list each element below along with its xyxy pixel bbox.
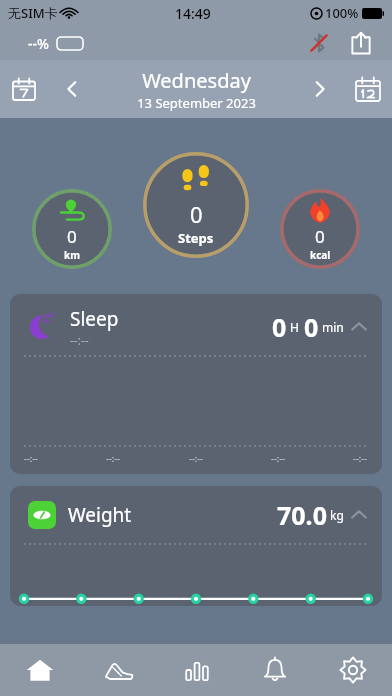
- staticText: Sleep: [70, 306, 119, 332]
- button[interactable]: Activity: [79, 644, 158, 696]
- staticText: 无SIM卡: [8, 4, 58, 22]
- button[interactable]: Home: [0, 644, 79, 696]
- staticText: 0: [304, 310, 319, 344]
- button[interactable]: 0: [143, 152, 249, 258]
- staticText: Wednesday: [142, 67, 251, 94]
- staticText: 13 September 2023: [137, 94, 256, 112]
- staticText: Steps: [178, 229, 214, 247]
- staticText: 100%: [325, 4, 359, 22]
- staticText: 0: [67, 225, 77, 248]
- staticText: H: [290, 319, 299, 335]
- staticText: km: [64, 248, 80, 262]
- button[interactable]: Alarms: [236, 644, 314, 696]
- button[interactable]: Weight: [10, 486, 382, 606]
- staticText: 0: [272, 310, 287, 344]
- staticText: kg: [330, 507, 344, 523]
- staticText: --:--: [70, 332, 89, 348]
- button[interactable]: Calendar: [344, 65, 392, 113]
- staticText: --:--: [189, 452, 204, 464]
- staticText: 14:49: [175, 4, 211, 23]
- button[interactable]: Previous day: [48, 65, 96, 113]
- button[interactable]: Sleep: [10, 294, 382, 474]
- staticText: --:--: [106, 452, 121, 464]
- staticText: --%: [28, 34, 49, 53]
- button[interactable]: Week view: [0, 65, 48, 113]
- button[interactable]: Next day: [296, 65, 344, 113]
- staticText: min: [322, 319, 344, 335]
- staticText: kcal: [310, 248, 331, 262]
- staticText: --:--: [271, 452, 286, 464]
- button[interactable]: 0: [280, 189, 360, 269]
- staticText: 0: [315, 225, 325, 248]
- staticText: --:--: [353, 452, 368, 464]
- button[interactable]: Statistics: [158, 644, 236, 696]
- staticText: --:--: [24, 452, 39, 464]
- button[interactable]: Settings: [314, 644, 392, 696]
- button[interactable]: Bluetooth off: [304, 28, 334, 58]
- staticText: Weight: [68, 502, 132, 528]
- button[interactable]: Share: [344, 26, 378, 60]
- staticText: 70.0: [277, 498, 327, 532]
- button[interactable]: 0: [32, 189, 112, 269]
- staticText: 0: [190, 199, 203, 229]
- button[interactable]: Wednesday: [96, 67, 296, 112]
